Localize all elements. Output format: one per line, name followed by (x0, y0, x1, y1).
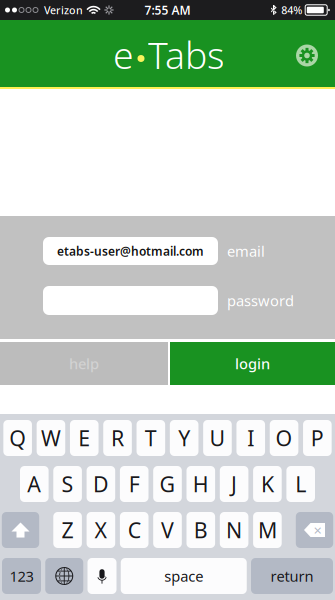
button[interactable]: K (253, 466, 282, 502)
button[interactable]: U (203, 420, 232, 456)
button[interactable]: M (253, 512, 282, 548)
staticText: help (69, 354, 99, 373)
staticText: O (276, 424, 293, 452)
button[interactable]: login (170, 342, 335, 385)
staticText: Q (9, 424, 26, 452)
staticText: R (111, 424, 124, 452)
staticText: 123 (9, 566, 33, 586)
button[interactable]: Y (170, 420, 198, 456)
button[interactable]: W (37, 420, 65, 456)
button[interactable]: Q (3, 420, 32, 456)
staticText: Verizon (44, 3, 83, 17)
staticText: e (113, 30, 134, 79)
staticText: Z (62, 516, 74, 544)
button[interactable]: V (153, 512, 182, 548)
button[interactable]: H (186, 466, 215, 502)
button[interactable]: L (286, 466, 315, 502)
staticText: return (270, 566, 313, 586)
staticText: 84% (281, 3, 302, 17)
button[interactable]: A (20, 466, 49, 502)
staticText: B (194, 516, 208, 544)
staticText: G (159, 470, 175, 498)
button[interactable]: E (70, 420, 99, 456)
staticText: C (128, 516, 141, 544)
staticText: D (93, 470, 109, 498)
button[interactable]: I (236, 420, 265, 456)
staticText: email (227, 241, 265, 261)
button[interactable]: C (120, 512, 148, 548)
staticText: P (311, 424, 324, 452)
staticText: I (247, 424, 254, 452)
button[interactable]: T (137, 420, 165, 456)
button[interactable]: X (87, 512, 115, 548)
staticText: Y (178, 424, 190, 452)
staticText: 7:55 AM (144, 2, 190, 18)
button[interactable]: Dictate (87, 558, 116, 594)
staticText: M (258, 516, 277, 544)
staticText: J (231, 470, 237, 498)
button[interactable]: Settings (289, 37, 325, 73)
staticText: K (261, 470, 274, 498)
button[interactable]: Z (53, 512, 82, 548)
button[interactable]: O (270, 420, 298, 456)
button[interactable]: P (303, 420, 332, 456)
staticText: space (164, 566, 203, 586)
staticText: login (235, 354, 270, 373)
staticText: password (227, 291, 294, 310)
staticText: U (209, 424, 225, 452)
button[interactable]: R (103, 420, 132, 456)
staticText: F (129, 470, 140, 498)
staticText: N (226, 516, 242, 544)
button[interactable]: D (87, 466, 115, 502)
staticText: L (295, 470, 306, 498)
button[interactable]: Shift (2, 512, 39, 548)
staticText: × (313, 520, 321, 540)
staticText: A (27, 470, 41, 498)
staticText: E (78, 424, 90, 452)
staticText: V (161, 516, 174, 544)
button[interactable]: Switch keyboard (45, 558, 83, 594)
staticText: etabs-user@hotmail.com (57, 243, 204, 259)
button[interactable]: J (220, 466, 248, 502)
button[interactable]: space (121, 558, 247, 594)
button[interactable] (43, 286, 218, 315)
button[interactable]: etabs-user@hotmail.com (43, 237, 218, 265)
staticText: Tabs (148, 30, 225, 79)
button[interactable]: G (153, 466, 182, 502)
button[interactable]: N (220, 512, 248, 548)
staticText: W (41, 424, 61, 452)
button[interactable]: 123 (2, 558, 41, 594)
button[interactable]: S (53, 466, 82, 502)
staticText: X (94, 516, 107, 544)
button[interactable]: F (120, 466, 148, 502)
button[interactable]: B (186, 512, 215, 548)
staticText: H (193, 470, 209, 498)
staticText: T (145, 424, 157, 452)
staticText: S (62, 470, 74, 498)
button[interactable]: Delete (296, 512, 333, 548)
button[interactable]: return (251, 558, 333, 594)
